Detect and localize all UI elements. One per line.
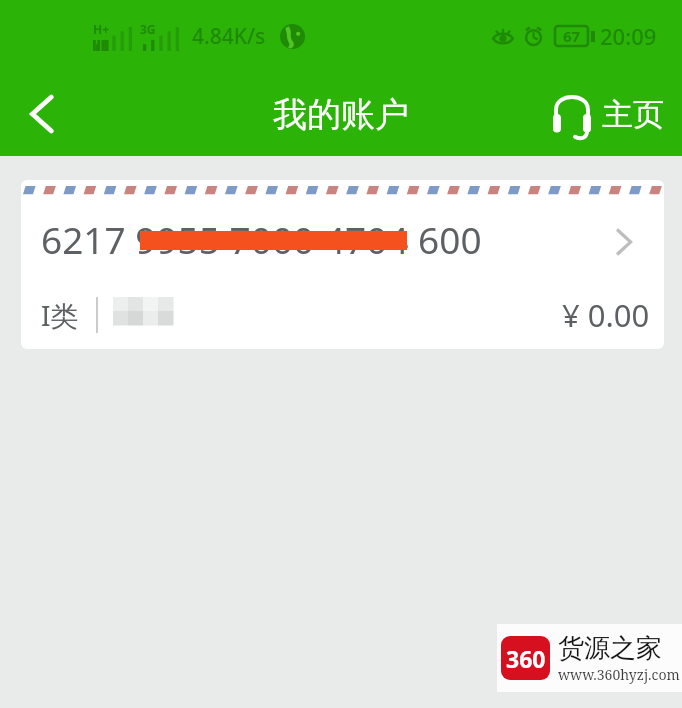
button[interactable]: 主页 Home — [553, 92, 664, 136]
button[interactable]: Bank card 6217, I类, balance ¥0.00 — [21, 180, 664, 349]
staticText: ¥ 0.00 — [562, 294, 650, 336]
staticText: 4.84K/s — [192, 22, 266, 51]
staticText: www.360hyzj.com — [558, 665, 680, 684]
staticText: 20:09 — [600, 21, 657, 51]
staticText: 6217 9955 7000 4704 600 — [41, 214, 482, 264]
staticText: 货源之家 — [558, 632, 662, 665]
staticText: H+ — [93, 21, 110, 37]
staticText: I类 — [41, 296, 79, 334]
staticText: 主页 — [602, 95, 664, 134]
staticText: 360 — [506, 643, 546, 674]
button[interactable]: Back — [0, 72, 84, 156]
staticText: 67 — [563, 26, 581, 46]
staticText: 我的账户 — [273, 93, 409, 136]
staticText: 3G — [140, 21, 156, 37]
